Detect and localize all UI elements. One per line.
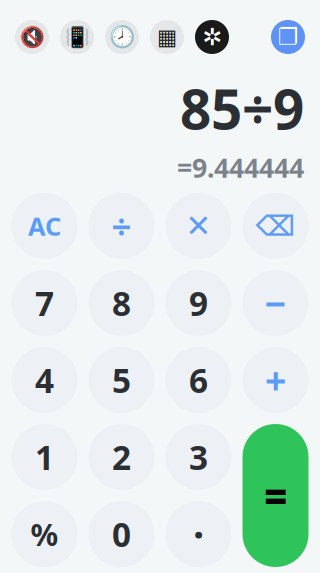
button[interactable]: All clear — [11, 193, 77, 259]
button[interactable]: Six — [165, 347, 231, 413]
button[interactable]: Eight — [88, 270, 154, 336]
staticText: % — [30, 514, 58, 554]
staticText: 5 — [112, 358, 131, 402]
staticText: ⌫ — [255, 210, 295, 242]
button[interactable]: Vibration — [60, 20, 94, 54]
button[interactable]: Rotate screen — [271, 20, 305, 54]
staticText: − — [264, 278, 286, 328]
button[interactable]: Percent — [11, 501, 77, 567]
button[interactable]: Backspace — [242, 193, 308, 259]
button[interactable]: Two — [88, 424, 154, 490]
staticText: 7 — [35, 281, 54, 325]
staticText: 3 — [189, 435, 208, 479]
staticText: 4 — [35, 358, 54, 402]
staticText: ❐ — [278, 24, 298, 50]
button[interactable]: Zero — [88, 501, 154, 567]
button[interactable]: Multiply — [165, 193, 231, 259]
button[interactable]: Minus — [242, 270, 308, 336]
staticText: 📳 — [64, 26, 89, 48]
staticText: =9.444444 — [177, 150, 304, 185]
button[interactable]: Divide — [88, 193, 154, 259]
staticText: 0 — [112, 512, 131, 556]
staticText: ✕ — [185, 209, 211, 243]
button[interactable]: Modes — [150, 20, 184, 54]
button[interactable]: History — [105, 20, 139, 54]
staticText: · — [193, 507, 204, 560]
button[interactable]: Equals — [242, 424, 308, 567]
staticText: 1 — [35, 435, 54, 479]
staticText: ✲ — [202, 23, 222, 51]
staticText: = — [264, 469, 287, 522]
button[interactable]: Three — [165, 424, 231, 490]
button[interactable]: Decimal point — [165, 501, 231, 567]
button[interactable]: Nine — [165, 270, 231, 336]
staticText: ÷ — [111, 203, 131, 249]
staticText: 9 — [189, 281, 208, 325]
staticText: + — [265, 355, 286, 405]
staticText: 2 — [112, 435, 131, 479]
button[interactable]: Plus — [242, 347, 308, 413]
staticText: 6 — [189, 358, 208, 402]
staticText: 🔇 — [19, 26, 44, 48]
staticText: 85÷9 — [180, 72, 304, 145]
button[interactable]: Mute sound — [15, 20, 49, 54]
staticText: AC — [28, 209, 61, 243]
button[interactable]: Settings — [195, 20, 229, 54]
button[interactable]: Five — [88, 347, 154, 413]
button[interactable]: One — [11, 424, 77, 490]
staticText: 8 — [112, 281, 131, 325]
staticText: 🕗 — [108, 25, 135, 49]
button[interactable]: Four — [11, 347, 77, 413]
staticText: ▦ — [157, 25, 177, 49]
button[interactable]: Seven — [11, 270, 77, 336]
